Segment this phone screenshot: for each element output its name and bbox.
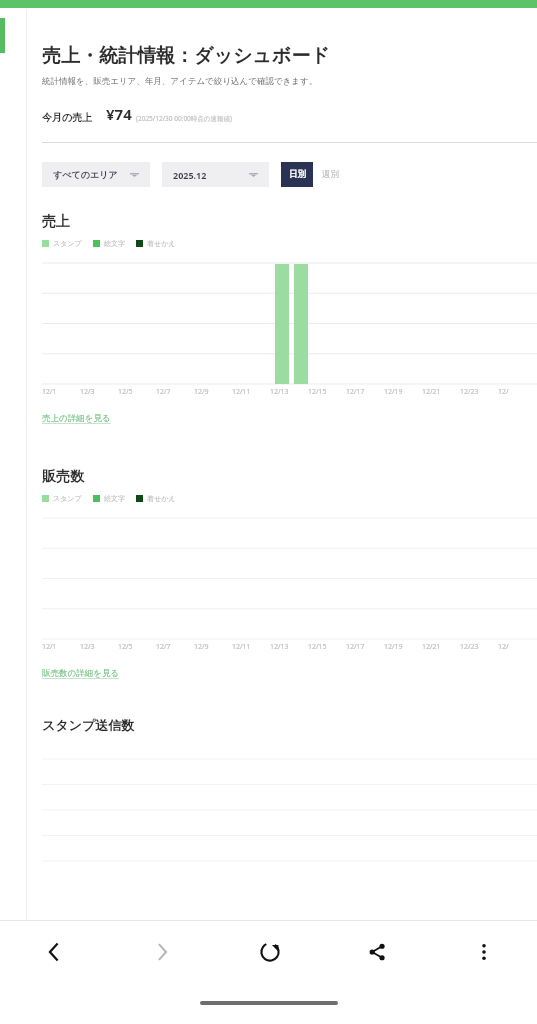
- staticText: 日別: [289, 169, 306, 180]
- staticText: 12/15: [308, 387, 327, 397]
- staticText: 売上: [42, 213, 70, 231]
- button[interactable]: Share: [323, 921, 430, 983]
- staticText: 統計情報を、販売エリア、年月、アイテムで絞り込んで確認できます。: [42, 76, 318, 87]
- button[interactable]: Reload: [216, 921, 323, 983]
- staticText: 12/7: [156, 387, 171, 397]
- button[interactable]: More options: [430, 921, 537, 983]
- staticText: 12/19: [384, 642, 403, 652]
- staticText: 12/21: [422, 642, 441, 652]
- staticText: 週別: [322, 169, 339, 180]
- staticText: 着せかえ: [147, 239, 176, 248]
- staticText: 販売数: [42, 468, 84, 486]
- staticText: 12/5: [118, 387, 133, 397]
- staticText: 12/17: [346, 387, 365, 397]
- staticText: 12/11: [232, 642, 251, 652]
- button[interactable]: 販売数の詳細を見る: [42, 668, 120, 679]
- staticText: スタンプ送信数: [42, 717, 135, 733]
- staticText: 12/23: [460, 387, 479, 397]
- staticText: 絵文字: [104, 239, 125, 248]
- staticText: 12/5: [118, 642, 133, 652]
- staticText: スタンプ: [53, 494, 82, 503]
- button[interactable]: Back: [0, 921, 108, 983]
- button[interactable]: 2025.12: [162, 162, 269, 187]
- staticText: 12/9: [194, 387, 209, 397]
- staticText: 12/1: [42, 387, 57, 397]
- staticText: 売上・統計情報：ダッシュボード: [42, 44, 330, 68]
- button[interactable]: Forward: [108, 921, 216, 983]
- staticText: 12/7: [156, 642, 171, 652]
- staticText: 12/1: [42, 642, 57, 652]
- staticText: 12/15: [308, 642, 327, 652]
- staticText: 12/21: [422, 387, 441, 397]
- staticText: 12/13: [270, 387, 289, 397]
- staticText: 12/17: [346, 642, 365, 652]
- button[interactable]: すべてのエリア: [42, 162, 150, 187]
- staticText: 絵文字: [104, 494, 125, 503]
- staticText: スタンプ: [53, 239, 82, 248]
- button[interactable]: 売上の詳細を見る: [42, 413, 111, 424]
- staticText: 着せかえ: [147, 494, 176, 503]
- staticText: 12/23: [460, 642, 479, 652]
- staticText: (2025/12/30 00:00時点の速報値): [136, 114, 232, 123]
- button[interactable]: 日別: [281, 162, 313, 187]
- staticText: 12/9: [194, 642, 209, 652]
- staticText: 12/3: [80, 387, 95, 397]
- staticText: 12/19: [384, 387, 403, 397]
- staticText: 販売数の詳細を見る: [42, 668, 120, 679]
- staticText: ¥74: [106, 104, 132, 124]
- staticText: すべてのエリア: [53, 169, 118, 180]
- staticText: 今月の売上: [42, 111, 93, 124]
- staticText: 12/11: [232, 387, 251, 397]
- button[interactable]: 週別: [313, 162, 348, 187]
- staticText: 12/13: [270, 642, 289, 652]
- staticText: 12/: [498, 642, 509, 652]
- staticText: 売上の詳細を見る: [42, 413, 111, 424]
- staticText: 12/3: [80, 642, 95, 652]
- staticText: 2025.12: [173, 169, 207, 181]
- staticText: 12/: [498, 387, 509, 397]
